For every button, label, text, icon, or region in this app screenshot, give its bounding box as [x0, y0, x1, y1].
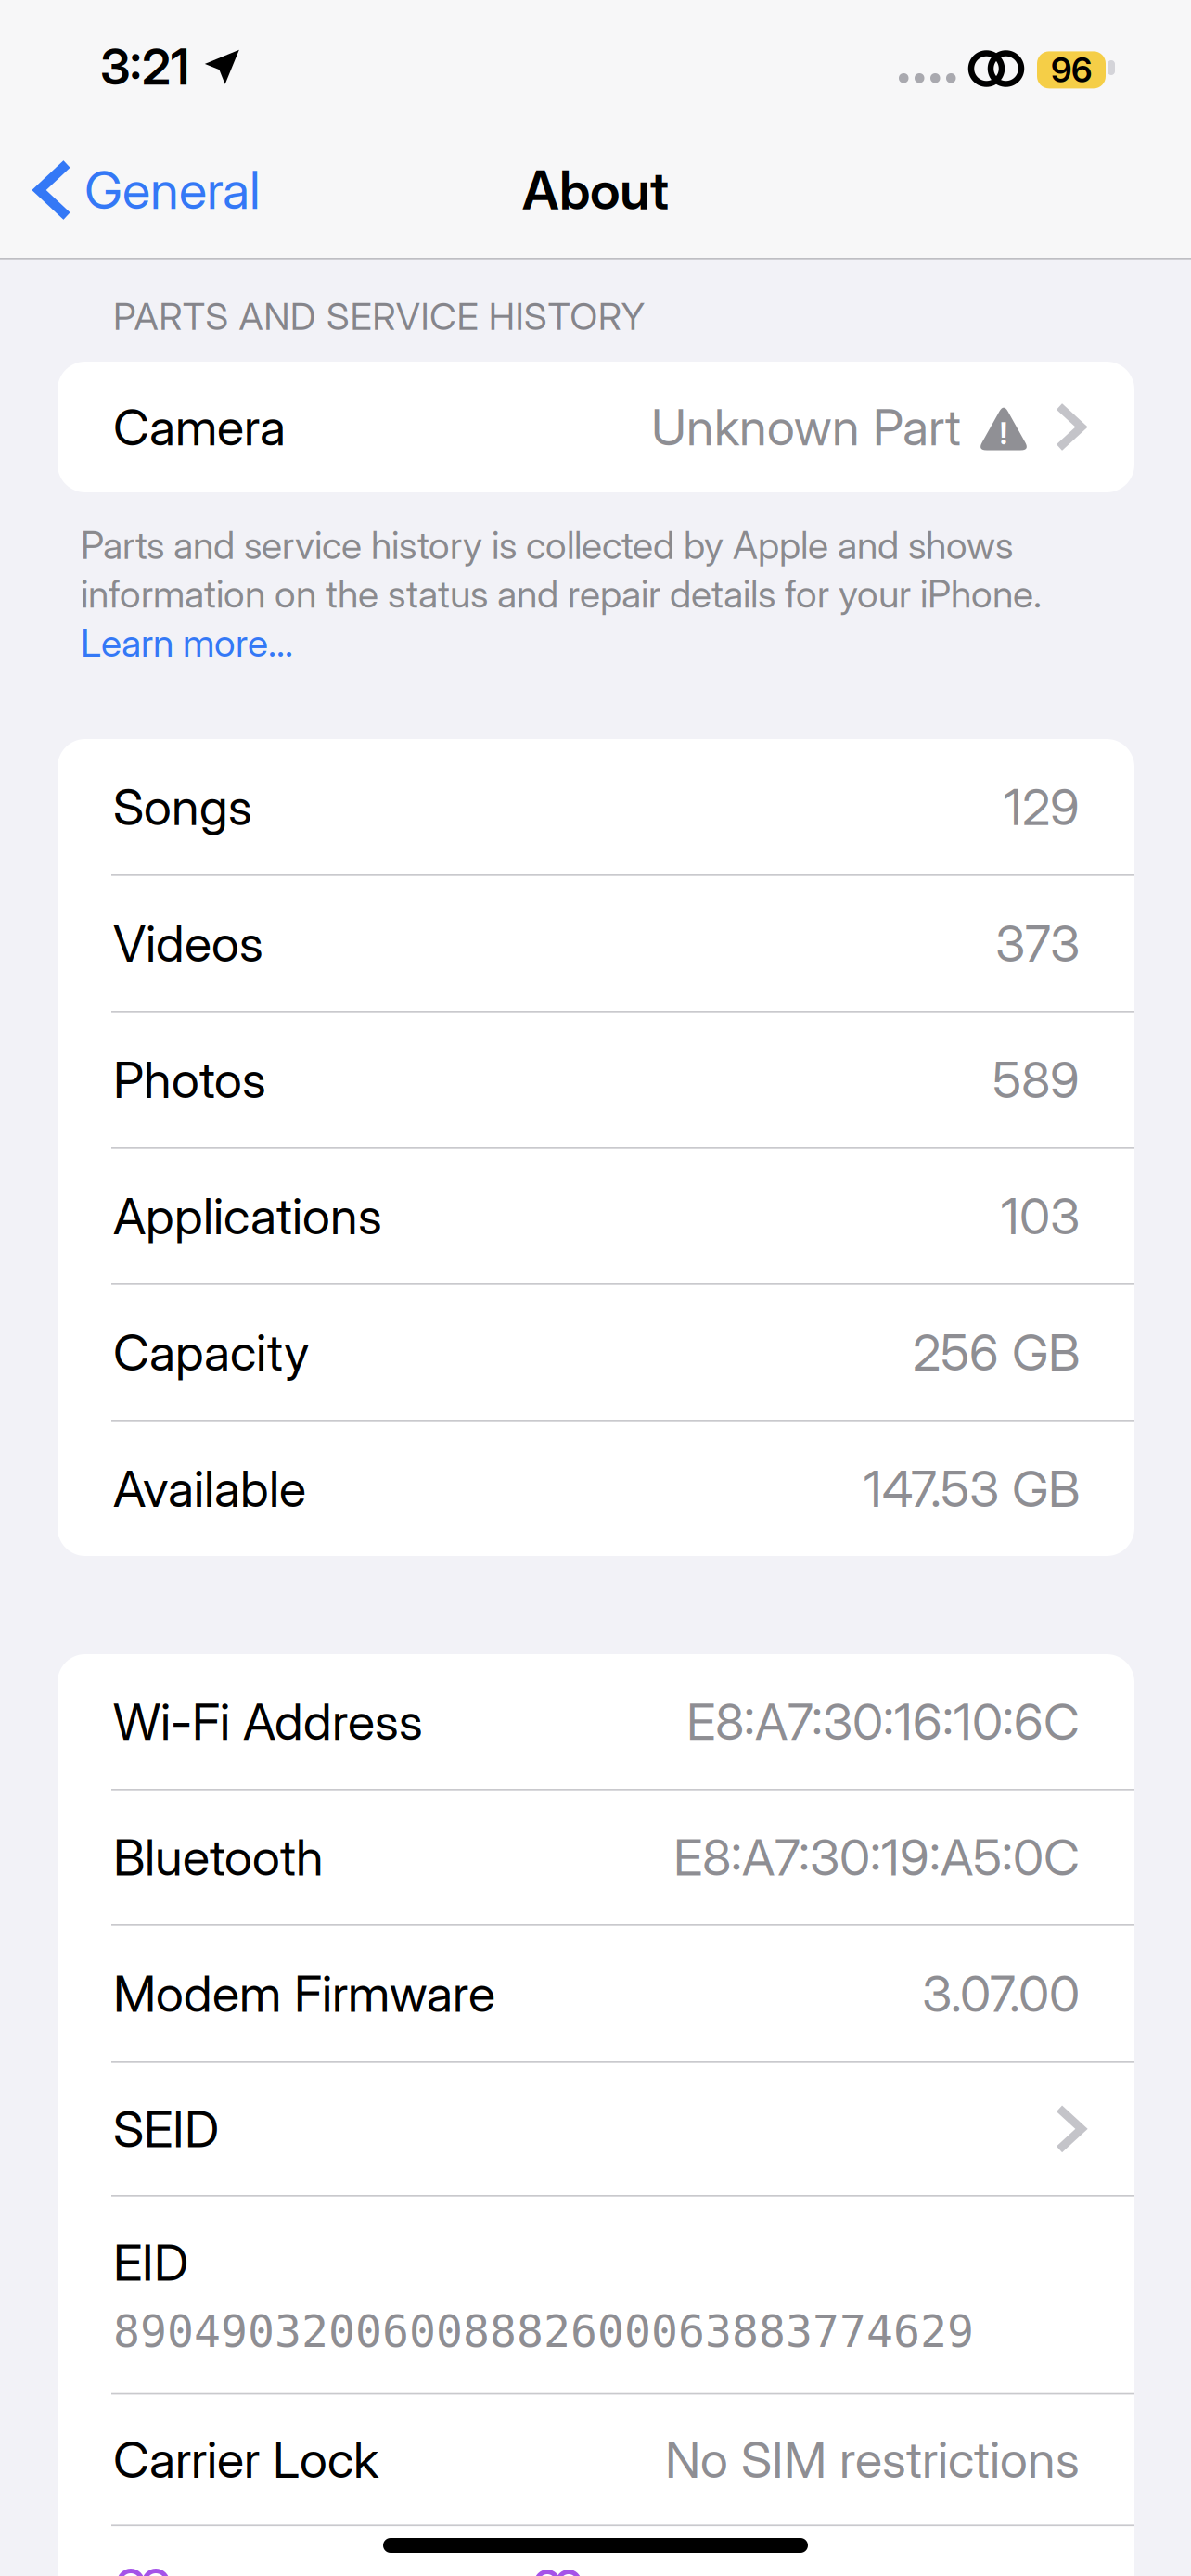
- staticText: Carrier Lock: [113, 2429, 378, 2490]
- staticText: No SIM restrictions: [665, 2429, 1080, 2490]
- staticText: 96: [1051, 49, 1092, 91]
- button[interactable]: Learn more...: [81, 620, 293, 666]
- staticText: Learn more...: [81, 620, 293, 666]
- staticText: Videos: [113, 913, 263, 974]
- staticText: E8:A7:30:19:A5:0C: [673, 1827, 1080, 1887]
- staticText: General: [84, 159, 261, 222]
- staticText: Wi-Fi Address: [113, 1691, 423, 1752]
- staticText: Camera: [113, 397, 286, 457]
- staticText: information on the status and repair det…: [81, 571, 1042, 617]
- staticText: 103: [1001, 1186, 1080, 1246]
- staticText: Bluetooth: [113, 1827, 324, 1887]
- staticText: 3:21: [100, 37, 189, 97]
- staticText: Unknown Part: [651, 397, 961, 457]
- staticText: 89049032006008882600063883774629: [113, 2306, 974, 2357]
- button[interactable]: Camera: [58, 362, 1134, 492]
- staticText: SEID: [113, 2099, 219, 2159]
- staticText: Modem Firmware: [113, 1963, 495, 2024]
- staticText: Photos: [113, 1049, 266, 1110]
- staticText: 256 GB: [913, 1322, 1080, 1383]
- staticText: Available: [113, 1458, 306, 1519]
- staticText: Songs: [113, 776, 252, 837]
- staticText: Applications: [113, 1186, 382, 1246]
- staticText: Capacity: [113, 1322, 310, 1383]
- staticText: EID: [113, 2232, 188, 2293]
- staticText: Parts and service history is collected b…: [81, 522, 1013, 568]
- staticText: 129: [1004, 776, 1080, 837]
- staticText: 147.53 GB: [864, 1458, 1080, 1519]
- staticText: E8:A7:30:16:10:6C: [686, 1691, 1080, 1752]
- staticText: 373: [995, 913, 1080, 974]
- button[interactable]: SEID: [58, 2063, 1134, 2195]
- staticText: 589: [992, 1049, 1080, 1110]
- staticText: !: [1000, 416, 1007, 451]
- staticText: PARTS AND SERVICE HISTORY: [113, 294, 645, 339]
- staticText: 3.07.00: [922, 1963, 1080, 2024]
- staticText: About: [522, 158, 669, 222]
- button[interactable]: Back: [39, 159, 261, 222]
